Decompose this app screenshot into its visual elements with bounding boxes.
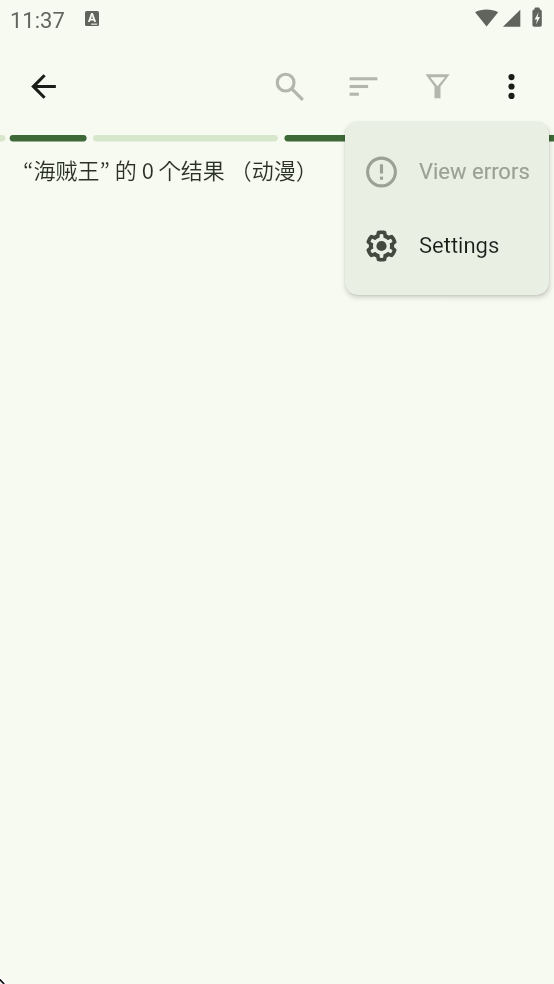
button[interactable]: Settings bbox=[345, 209, 548, 283]
staticText: View errors bbox=[419, 159, 530, 185]
button[interactable]: Search bbox=[271, 68, 308, 105]
button[interactable]: Navigate up bbox=[25, 68, 62, 105]
button[interactable]: View errors bbox=[345, 135, 548, 209]
staticText: “海贼王” 的 0 个结果 （动漫） bbox=[23, 153, 318, 185]
staticText: 11:37 bbox=[10, 8, 65, 34]
button[interactable]: Sort bbox=[345, 68, 382, 105]
staticText: Settings bbox=[419, 233, 500, 259]
button[interactable]: More options bbox=[493, 68, 530, 105]
staticText: A bbox=[88, 11, 96, 25]
button[interactable]: Filter bbox=[419, 68, 456, 105]
